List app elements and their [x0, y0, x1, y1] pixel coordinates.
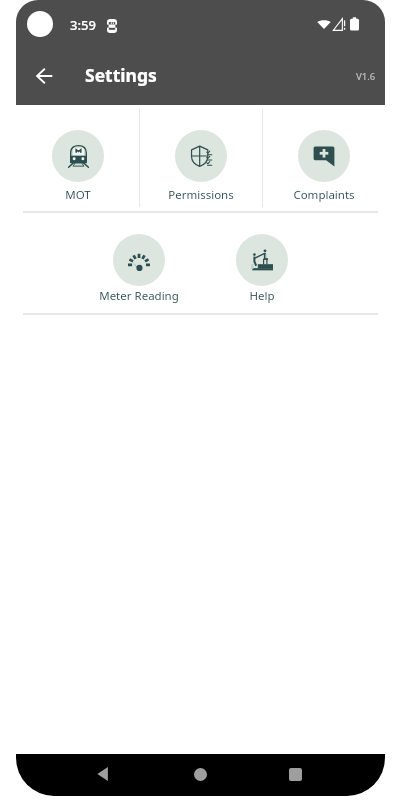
staticText: Meter Reading — [99, 288, 179, 304]
button[interactable]: Permissions — [140, 105, 262, 203]
staticText: MOT — [65, 187, 91, 203]
button[interactable]: Recents — [289, 768, 302, 781]
button[interactable]: Back — [96, 767, 110, 781]
button[interactable]: Complaints — [263, 105, 385, 203]
staticText: Complaints — [293, 187, 355, 203]
button[interactable]: Meter Reading — [77, 213, 200, 304]
button[interactable]: MOT — [16, 105, 139, 203]
button[interactable]: Help — [200, 213, 323, 304]
button[interactable]: Back — [23, 55, 65, 97]
staticText: V1.6 — [356, 70, 376, 83]
button[interactable]: Home — [194, 768, 207, 781]
staticText: Settings — [85, 63, 157, 87]
staticText: Permissions — [168, 187, 234, 203]
staticText: Help — [249, 288, 275, 304]
staticText: 3:59 — [70, 16, 96, 34]
